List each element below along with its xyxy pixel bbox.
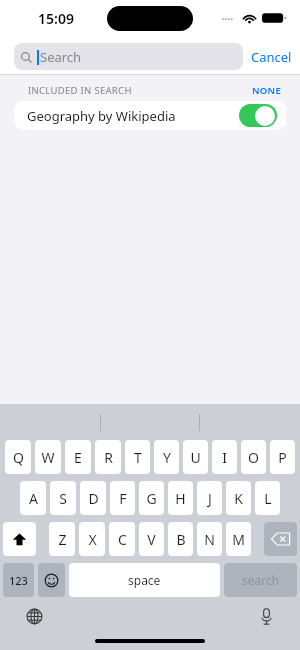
button[interactable]: N <box>197 522 222 556</box>
staticText: K <box>234 489 243 508</box>
staticText: R <box>104 448 113 467</box>
button[interactable]: P <box>270 440 295 474</box>
button[interactable]: Q <box>5 440 31 474</box>
button[interactable]: Cancel <box>251 48 292 66</box>
button[interactable]: M <box>226 522 251 556</box>
staticText: Y <box>163 448 171 467</box>
staticText: P <box>278 448 287 467</box>
button[interactable]: X <box>79 522 105 556</box>
staticText: W <box>41 448 55 467</box>
staticText: NONE <box>252 84 282 97</box>
button[interactable]: J <box>197 481 222 515</box>
staticText: Q <box>13 448 24 467</box>
button[interactable]: S <box>50 481 76 515</box>
staticText: V <box>147 530 156 549</box>
button[interactable]: E <box>65 440 91 474</box>
button[interactable]: V <box>139 522 164 556</box>
button[interactable]: U <box>183 440 208 474</box>
staticText: 15:09 <box>38 9 74 28</box>
button[interactable]: 123 <box>3 563 34 597</box>
staticText: D <box>88 489 99 508</box>
staticText: S <box>59 489 67 508</box>
staticText: Cancel <box>251 48 292 66</box>
button[interactable]: space <box>69 563 220 597</box>
button[interactable]: Z <box>49 522 75 556</box>
button[interactable]: C <box>109 522 135 556</box>
button[interactable]: G <box>139 481 164 515</box>
button[interactable]: D <box>80 481 106 515</box>
button[interactable]: Change keyboard language <box>21 603 47 629</box>
staticText: Geography by Wikipedia <box>27 107 176 125</box>
staticText: T <box>134 448 142 467</box>
staticText: 123 <box>9 573 28 588</box>
button[interactable]: B <box>168 522 193 556</box>
staticText: L <box>264 489 272 508</box>
button[interactable]: R <box>95 440 121 474</box>
staticText: G <box>146 489 157 508</box>
staticText: C <box>118 530 127 549</box>
staticText: Search <box>40 48 82 66</box>
button[interactable]: Emoji <box>38 563 65 597</box>
staticText: X <box>88 530 97 549</box>
button[interactable]: W <box>35 440 61 474</box>
button[interactable]: Geography by Wikipedia <box>14 101 286 130</box>
staticText: INCLUDED IN SEARCH <box>28 84 132 97</box>
staticText: E <box>74 448 82 467</box>
staticText: I <box>222 448 227 467</box>
button[interactable]: Search <box>14 43 243 70</box>
staticText: N <box>204 530 215 549</box>
button[interactable]: L <box>255 481 280 515</box>
staticText: J <box>208 489 212 508</box>
button[interactable]: A <box>20 481 46 515</box>
staticText: A <box>29 489 38 508</box>
button[interactable]: search <box>224 563 297 597</box>
staticText: H <box>175 489 186 508</box>
button[interactable]: T <box>125 440 150 474</box>
staticText: M <box>232 530 245 549</box>
button[interactable]: NONE <box>252 84 282 97</box>
button[interactable]: K <box>226 481 251 515</box>
button[interactable] <box>239 104 277 127</box>
staticText: O <box>248 448 259 467</box>
staticText: space <box>128 572 161 588</box>
button[interactable]: Backspace <box>264 522 297 556</box>
button[interactable]: F <box>110 481 135 515</box>
button[interactable]: Dictate <box>253 603 279 629</box>
staticText: U <box>190 448 201 467</box>
staticText: B <box>176 530 186 549</box>
button[interactable]: Y <box>154 440 179 474</box>
button[interactable]: O <box>241 440 266 474</box>
button[interactable]: Shift <box>3 522 36 556</box>
staticText: Z <box>58 530 67 549</box>
button[interactable]: I <box>212 440 237 474</box>
staticText: search <box>242 572 280 588</box>
staticText: F <box>119 489 127 508</box>
button[interactable]: H <box>168 481 193 515</box>
